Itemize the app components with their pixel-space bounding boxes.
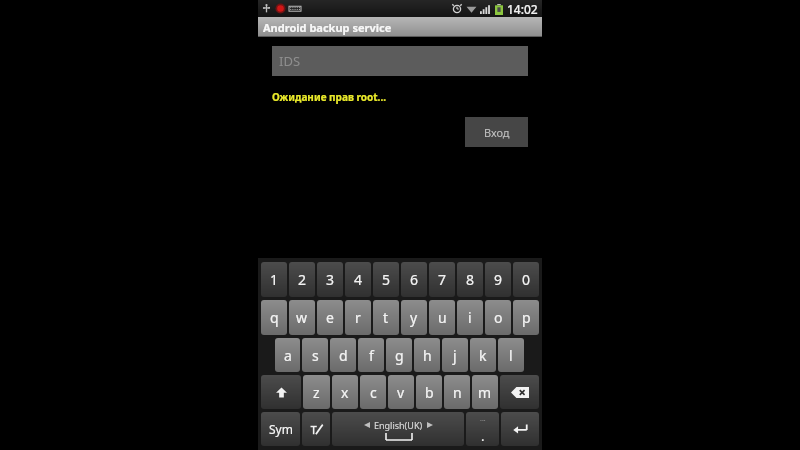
- button[interactable]: 5: [373, 262, 399, 297]
- button[interactable]: r: [345, 300, 371, 335]
- button[interactable]: Enter: [501, 412, 539, 446]
- button[interactable]: Period: [466, 412, 499, 446]
- button[interactable]: p: [513, 300, 539, 335]
- staticText: 9: [494, 270, 503, 289]
- button[interactable]: t: [373, 300, 399, 335]
- staticText: 3: [326, 270, 335, 289]
- staticText: .: [481, 427, 485, 445]
- staticText: p: [522, 308, 531, 327]
- button[interactable]: 0: [513, 262, 539, 297]
- staticText: IDS: [279, 52, 301, 70]
- button[interactable]: 9: [485, 262, 511, 297]
- staticText: 8: [466, 270, 475, 289]
- button[interactable]: b: [416, 375, 442, 409]
- button[interactable]: 4: [345, 262, 371, 297]
- button[interactable]: f: [358, 338, 384, 372]
- button[interactable]: a: [275, 338, 300, 372]
- staticText: u: [438, 308, 447, 327]
- button[interactable]: s: [302, 338, 328, 372]
- staticText: d: [339, 346, 348, 365]
- staticText: 5: [382, 270, 391, 289]
- button[interactable]: u: [429, 300, 455, 335]
- button[interactable]: w: [289, 300, 315, 335]
- button[interactable]: i: [457, 300, 483, 335]
- staticText: 4: [354, 270, 363, 289]
- button[interactable]: x: [332, 375, 358, 409]
- button[interactable]: 6: [401, 262, 427, 297]
- staticText: w: [296, 308, 308, 327]
- staticText: 1: [270, 270, 279, 289]
- button[interactable]: l: [498, 338, 524, 372]
- staticText: s: [312, 346, 319, 365]
- staticText: 7: [438, 270, 447, 289]
- button[interactable]: q: [261, 300, 287, 335]
- button[interactable]: k: [470, 338, 496, 372]
- button[interactable]: d: [330, 338, 356, 372]
- staticText: k: [479, 346, 487, 365]
- button[interactable]: Shift: [261, 375, 301, 409]
- button[interactable]: Вход: [465, 117, 528, 147]
- button[interactable]: 3: [317, 262, 343, 297]
- button[interactable]: Sym: [261, 412, 300, 446]
- staticText: Ожидание прав root...: [272, 90, 386, 104]
- staticText: f: [369, 346, 374, 365]
- button[interactable]: 2: [289, 262, 315, 297]
- staticText: Sym: [269, 421, 293, 437]
- staticText: 0: [522, 270, 531, 289]
- button[interactable]: v: [388, 375, 414, 409]
- staticText: b: [425, 383, 434, 402]
- staticText: c: [370, 383, 377, 402]
- button[interactable]: Handwriting: [302, 412, 330, 446]
- staticText: m: [478, 383, 492, 402]
- staticText: e: [326, 308, 334, 327]
- staticText: q: [270, 308, 279, 327]
- button[interactable]: 7: [429, 262, 455, 297]
- staticText: z: [313, 383, 320, 402]
- staticText: 14:02: [507, 1, 538, 17]
- button[interactable]: m: [472, 375, 498, 409]
- staticText: a: [284, 346, 292, 365]
- staticText: n: [453, 383, 462, 402]
- staticText: v: [397, 383, 405, 402]
- button[interactable]: z: [303, 375, 330, 409]
- staticText: h: [423, 346, 432, 365]
- staticText: Android backup service: [263, 20, 392, 35]
- staticText: r: [355, 308, 361, 327]
- button[interactable]: Space: [332, 412, 464, 446]
- button[interactable]: n: [444, 375, 470, 409]
- button[interactable]: h: [414, 338, 440, 372]
- button[interactable]: 1: [261, 262, 287, 297]
- button[interactable]: g: [386, 338, 412, 372]
- staticText: t: [383, 308, 389, 327]
- button[interactable]: e: [317, 300, 343, 335]
- staticText: l: [509, 346, 513, 365]
- button[interactable]: c: [360, 375, 386, 409]
- staticText: ...: [480, 414, 486, 424]
- button[interactable]: IDS: [272, 46, 528, 76]
- staticText: i: [468, 308, 472, 327]
- staticText: 6: [410, 270, 419, 289]
- staticText: English(UK): [374, 419, 423, 431]
- button[interactable]: Backspace: [500, 375, 539, 409]
- staticText: 2: [298, 270, 307, 289]
- button[interactable]: j: [442, 338, 468, 372]
- staticText: j: [453, 346, 457, 365]
- button[interactable]: 8: [457, 262, 483, 297]
- staticText: Вход: [484, 125, 510, 140]
- staticText: x: [341, 383, 349, 402]
- button[interactable]: o: [485, 300, 511, 335]
- button[interactable]: y: [401, 300, 427, 335]
- staticText: o: [494, 308, 503, 327]
- staticText: y: [410, 308, 418, 327]
- staticText: g: [395, 346, 404, 365]
